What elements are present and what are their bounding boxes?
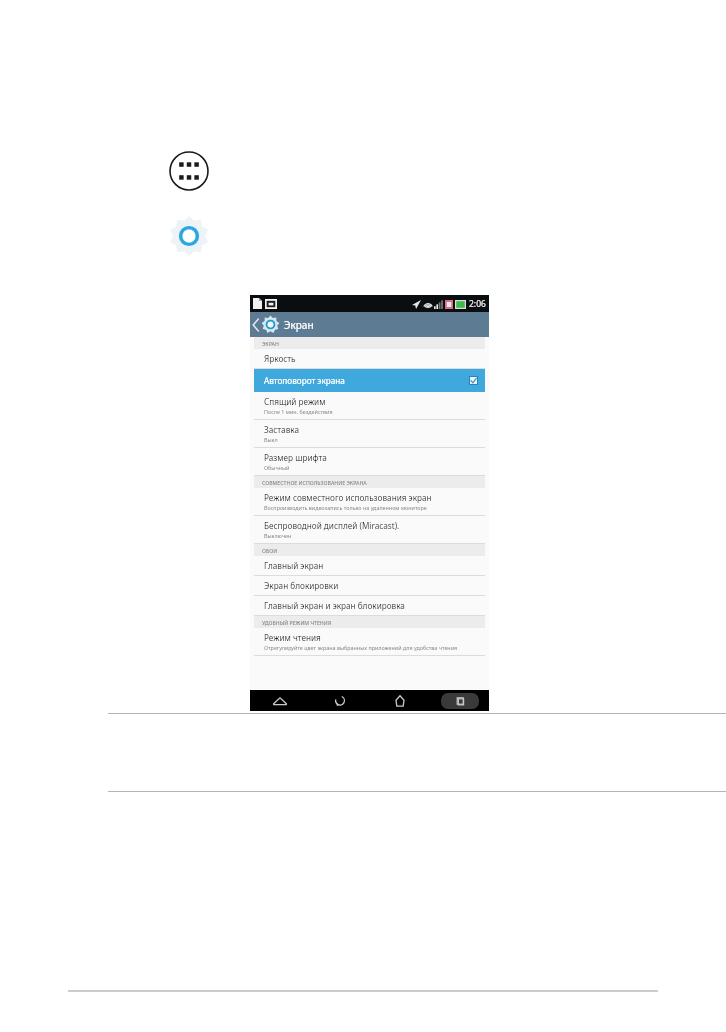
button[interactable]: Menu bbox=[250, 690, 310, 711]
staticText: Отрегулируйте цвет экрана выбранных прил… bbox=[264, 644, 458, 651]
button[interactable]: Режим совместного использования экран bbox=[250, 488, 489, 516]
staticText: Экран блокировки bbox=[264, 580, 339, 591]
staticText: Обычный bbox=[264, 464, 290, 471]
staticText: Экран bbox=[284, 318, 314, 332]
staticText: Главный экран bbox=[264, 560, 324, 571]
staticText: Размер шрифта bbox=[264, 452, 327, 463]
staticText: Выкл bbox=[264, 436, 278, 443]
button[interactable]: Экран блокировки bbox=[250, 576, 489, 596]
staticText: УДОБНЫЙ РЕЖИМ ЧТЕНИЯ bbox=[262, 619, 332, 626]
button[interactable]: Home bbox=[370, 690, 430, 711]
staticText: Беспроводной дисплей (Miracast). bbox=[264, 520, 400, 531]
button[interactable]: Заставка bbox=[250, 420, 489, 448]
button[interactable]: Беспроводной дисплей (Miracast). bbox=[250, 516, 489, 544]
staticText: Режим совместного использования экран bbox=[264, 492, 432, 503]
staticText: СОВМЕСТНОЕ ИСПОЛЬЗОВАНИЕ ЭКРАНА bbox=[262, 479, 367, 486]
button[interactable]: Размер шрифта bbox=[250, 448, 489, 476]
staticText: ЭКРАН bbox=[262, 340, 279, 347]
button[interactable]: Автоповорот экрана bbox=[254, 369, 485, 392]
button[interactable]: Спящий режим bbox=[250, 392, 489, 420]
button[interactable]: Recent apps bbox=[430, 690, 489, 711]
staticText: ОБОИ bbox=[262, 547, 278, 554]
button[interactable]: Яркость bbox=[250, 349, 489, 369]
staticText: Автоповорот экрана bbox=[264, 375, 469, 386]
staticText: Заставка bbox=[264, 424, 300, 435]
button[interactable]: Back bbox=[252, 312, 280, 337]
button[interactable]: All apps bbox=[168, 150, 210, 192]
staticText: Воспроизводить видеозапись только на уда… bbox=[264, 504, 427, 511]
staticText: Спящий режим bbox=[264, 396, 326, 407]
staticText: 2:06 bbox=[469, 298, 486, 310]
staticText: Режим чтения bbox=[264, 632, 321, 643]
button[interactable]: Back bbox=[310, 690, 370, 711]
button[interactable]: Главный экран и экран блокировка bbox=[250, 596, 489, 616]
staticText: После 1 мин. бездействия bbox=[264, 408, 333, 415]
button[interactable]: Режим чтения bbox=[250, 628, 489, 656]
staticText: Главный экран и экран блокировка bbox=[264, 600, 405, 611]
button[interactable]: Settings bbox=[168, 215, 210, 257]
staticText: Выключен bbox=[264, 532, 292, 539]
button[interactable]: Главный экран bbox=[250, 556, 489, 576]
staticText: Яркость bbox=[264, 353, 296, 364]
